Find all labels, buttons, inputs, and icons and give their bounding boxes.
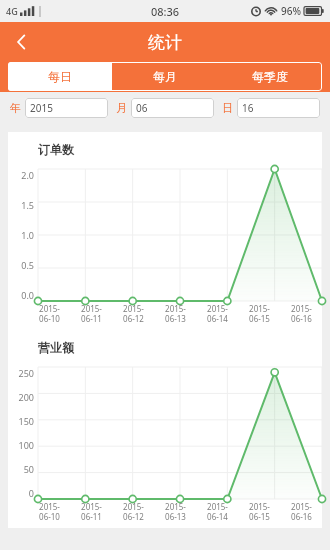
button[interactable]: Back	[0, 22, 42, 62]
button[interactable]: 06	[131, 98, 214, 118]
staticText: 每月	[153, 69, 177, 84]
staticText: 每季度	[252, 69, 288, 84]
staticText: 2015- 06-16	[291, 501, 312, 522]
staticText: 2015- 06-13	[165, 501, 186, 522]
staticText: 08:36	[151, 4, 180, 19]
staticText: 0.5	[21, 259, 34, 271]
staticText: 2015- 06-10	[39, 501, 60, 522]
staticText: 4G	[6, 5, 18, 17]
staticText: 1.0	[21, 229, 34, 241]
staticText: 月	[116, 101, 127, 115]
staticText: 每日	[48, 69, 72, 84]
staticText: 2015- 06-15	[249, 501, 270, 522]
staticText: 2015- 06-13	[165, 303, 186, 324]
button[interactable]: 每月	[112, 62, 217, 91]
staticText: 16	[242, 101, 254, 115]
staticText: 200	[18, 391, 34, 403]
staticText: 250	[18, 367, 34, 379]
staticText: 0.0	[21, 289, 34, 301]
staticText: 96%	[281, 4, 301, 18]
staticText: 0	[28, 487, 34, 499]
staticText: 2.0	[21, 169, 34, 181]
staticText: 150	[18, 415, 34, 427]
staticText: 2015- 06-14	[207, 501, 228, 522]
staticText: 统计	[148, 32, 182, 53]
button[interactable]: 每季度	[217, 62, 322, 91]
button[interactable]: 2015	[25, 98, 108, 118]
button[interactable]: 16	[237, 98, 320, 118]
staticText: 营业额	[38, 340, 74, 355]
button[interactable]: 每日	[8, 62, 112, 91]
staticText: 2015- 06-10	[39, 303, 60, 324]
staticText: 2015- 06-12	[123, 501, 144, 522]
staticText: 2015- 06-16	[291, 303, 312, 324]
staticText: 1.5	[21, 199, 34, 211]
staticText: 2015- 06-11	[81, 303, 102, 324]
staticText: 2015- 06-15	[249, 303, 270, 324]
staticText: 2015- 06-14	[207, 303, 228, 324]
staticText: 06	[136, 101, 148, 115]
staticText: 年	[10, 101, 21, 115]
staticText: 2015- 06-12	[123, 303, 144, 324]
staticText: 日	[222, 101, 233, 115]
staticText: 2015- 06-11	[81, 501, 102, 522]
staticText: 订单数	[38, 142, 74, 157]
staticText: 100	[18, 439, 34, 451]
staticText: 2015	[30, 101, 53, 115]
staticText: 50	[23, 463, 34, 475]
